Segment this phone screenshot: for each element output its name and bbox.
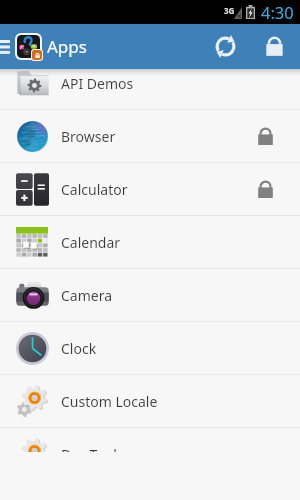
staticText: Browser <box>61 127 116 146</box>
staticText: Camera <box>61 286 113 305</box>
staticText: Calculator <box>61 180 128 199</box>
button[interactable]: Dev Tools <box>0 428 300 480</box>
staticText: 3G <box>224 5 235 16</box>
button[interactable]: Apps <box>15 33 43 61</box>
button[interactable]: Clock <box>0 322 300 374</box>
staticText: Calendar <box>61 233 121 252</box>
button[interactable]: Camera <box>0 269 300 321</box>
staticText: Dev Tools <box>61 445 124 464</box>
staticText: Clock <box>61 339 97 358</box>
button[interactable]: Custom Locale <box>0 375 300 427</box>
staticText: 4:30 <box>261 1 294 23</box>
staticText: Apps <box>47 35 87 58</box>
button[interactable]: Calculator <box>0 163 300 215</box>
button[interactable]: Refresh <box>205 24 245 69</box>
button[interactable]: Calendar <box>0 216 300 268</box>
staticText: Custom Locale <box>61 392 158 411</box>
button[interactable]: Navigate up <box>0 24 14 69</box>
button[interactable]: Lock <box>256 24 292 69</box>
button[interactable]: Browser <box>0 110 300 162</box>
button[interactable]: API Demos <box>0 57 300 109</box>
staticText: API Demos <box>61 74 134 93</box>
